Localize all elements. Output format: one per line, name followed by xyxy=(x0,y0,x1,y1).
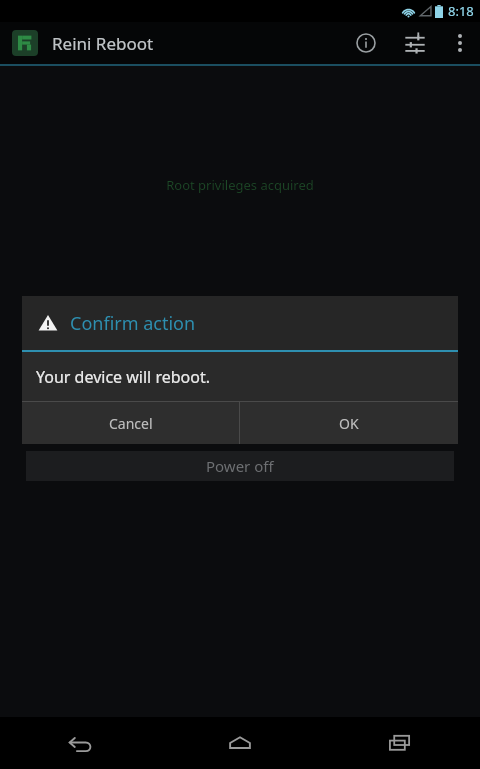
button[interactable]: More options xyxy=(440,22,480,64)
staticText: Power off xyxy=(206,456,274,476)
staticText: Your device will reboot. xyxy=(36,366,210,388)
button[interactable]: Settings xyxy=(390,22,440,64)
button[interactable]: Cancel xyxy=(22,402,239,444)
button[interactable]: Power off xyxy=(26,451,454,481)
staticText: OK xyxy=(339,414,359,433)
staticText: Root privileges acquired xyxy=(166,176,314,194)
button[interactable]: Home xyxy=(160,717,320,769)
button[interactable]: Recent apps xyxy=(320,717,480,769)
button[interactable]: Back xyxy=(0,717,160,769)
button[interactable]: Info xyxy=(342,22,390,64)
staticText: Reini Reboot xyxy=(52,32,154,55)
staticText: Confirm action xyxy=(70,311,196,336)
button[interactable]: OK xyxy=(240,402,458,444)
staticText: Cancel xyxy=(109,414,153,433)
staticText: 8:18 xyxy=(448,2,474,20)
